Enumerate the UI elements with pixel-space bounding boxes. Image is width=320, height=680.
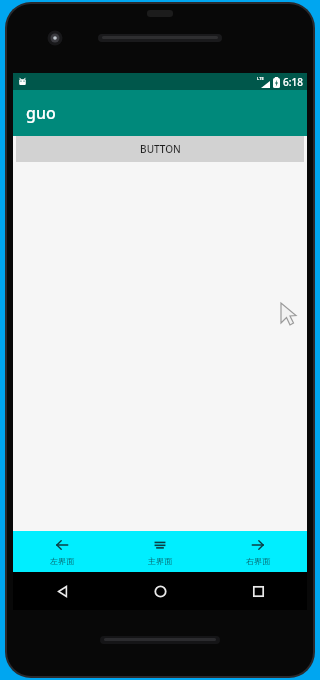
button[interactable]: Recent apps [209, 572, 307, 610]
button[interactable]: Right screen [209, 531, 307, 572]
staticText: 6:18 [283, 75, 303, 89]
button[interactable]: Left screen [13, 531, 111, 572]
button[interactable]: Main screen [111, 531, 209, 572]
staticText: 主界面 [148, 556, 172, 566]
button[interactable]: Home [111, 572, 209, 610]
button[interactable]: Back [13, 572, 111, 610]
staticText: 右界面 [246, 556, 270, 566]
staticText: LTE [257, 76, 264, 81]
staticText: BUTTON [140, 142, 181, 156]
staticText: 左界面 [50, 556, 74, 566]
button[interactable]: BUTTON [16, 136, 304, 162]
staticText: guo [26, 102, 56, 124]
